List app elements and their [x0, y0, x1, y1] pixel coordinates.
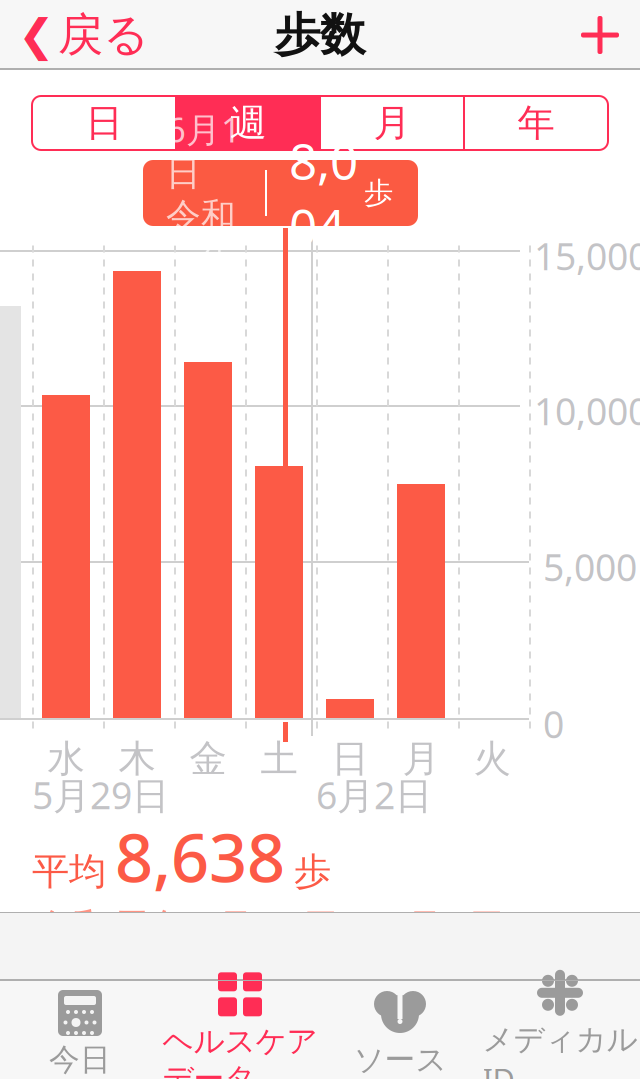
button[interactable]: 週 [177, 96, 319, 150]
staticText: 6月1日 [166, 106, 241, 195]
staticText: 週 [229, 100, 266, 146]
staticText: 平均 [32, 849, 106, 895]
staticText: 日 [331, 736, 368, 782]
button[interactable]: ヘルスケアデータ [160, 980, 320, 1079]
staticText: 令和元年5月29日〜6月5日 [32, 900, 507, 954]
staticText: 歩 [294, 849, 331, 895]
staticText: ❮ [18, 10, 55, 60]
staticText: 木 [118, 736, 155, 782]
staticText: 歩数 [275, 7, 365, 63]
staticText: 月 [373, 100, 410, 146]
staticText: 6月2日 [316, 770, 432, 820]
button[interactable]: 今日 [0, 980, 160, 1079]
staticText: 5,000 [543, 542, 637, 592]
button[interactable]: 日 [33, 96, 175, 150]
staticText: 10,000 [534, 386, 640, 436]
staticText: 15,000 [534, 231, 640, 281]
staticText: 火 [473, 736, 510, 782]
staticText: メディカルID [482, 1021, 637, 1079]
staticText: 日 [85, 100, 122, 146]
staticText: ソース [353, 1041, 446, 1079]
button[interactable]: ❮ [0, 0, 163, 70]
button[interactable]: 月 [321, 96, 463, 150]
staticText: 金 [189, 736, 226, 782]
staticText: 8,638 [115, 812, 285, 900]
staticText: 年 [517, 100, 554, 146]
button[interactable]: ソース [320, 980, 480, 1079]
staticText: 令和元年 [166, 195, 236, 280]
staticText: 8,004 [289, 127, 358, 258]
button[interactable]: メディカルID [480, 980, 640, 1079]
button[interactable]: 年 [465, 96, 607, 150]
staticText: 月 [402, 736, 439, 782]
staticText: 今日 [49, 1041, 111, 1079]
staticText: 戻る [58, 7, 149, 63]
staticText: 水 [47, 736, 84, 782]
staticText: 土 [260, 736, 297, 782]
staticText: ヘルスケアデータ [162, 1022, 317, 1079]
button[interactable]: データを追加 [560, 0, 640, 70]
staticText: 歩 [364, 175, 393, 211]
staticText: 0 [543, 699, 564, 749]
staticText: 5月29日 [32, 770, 169, 820]
